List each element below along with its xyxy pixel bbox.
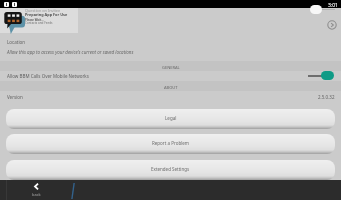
button[interactable]: Legal bbox=[6, 109, 335, 129]
button[interactable]: Report a Problem bbox=[6, 134, 335, 154]
staticText: 3:01 bbox=[328, 2, 338, 9]
staticText: Legal bbox=[165, 115, 177, 121]
button[interactable]: Back bbox=[28, 183, 44, 197]
staticText: Report a Problem bbox=[152, 140, 190, 146]
button[interactable]: More info bbox=[327, 20, 337, 30]
button[interactable]: Location toggle bbox=[310, 5, 322, 14]
staticText: Question on Invitee bbox=[25, 8, 61, 13]
staticText: 2.5.0.32 bbox=[318, 94, 335, 100]
staticText: Please Wait... bbox=[25, 18, 44, 22]
button[interactable]: Allow BBM calls toggle bbox=[321, 71, 334, 80]
staticText: GENERAL bbox=[162, 65, 180, 70]
staticText: Version bbox=[7, 94, 23, 100]
staticText: Contacts and Feeds bbox=[25, 21, 53, 25]
staticText: ABOUT bbox=[164, 85, 178, 90]
button[interactable]: Allow BBM Calls Over Mobile Networks bbox=[0, 70, 341, 80]
staticText: Preparing App For Use bbox=[25, 12, 68, 17]
button[interactable]: Extended Settings bbox=[6, 160, 335, 180]
staticText: back bbox=[32, 192, 41, 197]
staticText: Allow this app to access your device's c… bbox=[7, 49, 134, 55]
staticText: Extended Settings bbox=[151, 166, 190, 172]
staticText: Allow BBM Calls Over Mobile Networks bbox=[7, 73, 89, 79]
staticText: Location bbox=[7, 39, 26, 45]
button[interactable]: Location bbox=[0, 34, 341, 58]
